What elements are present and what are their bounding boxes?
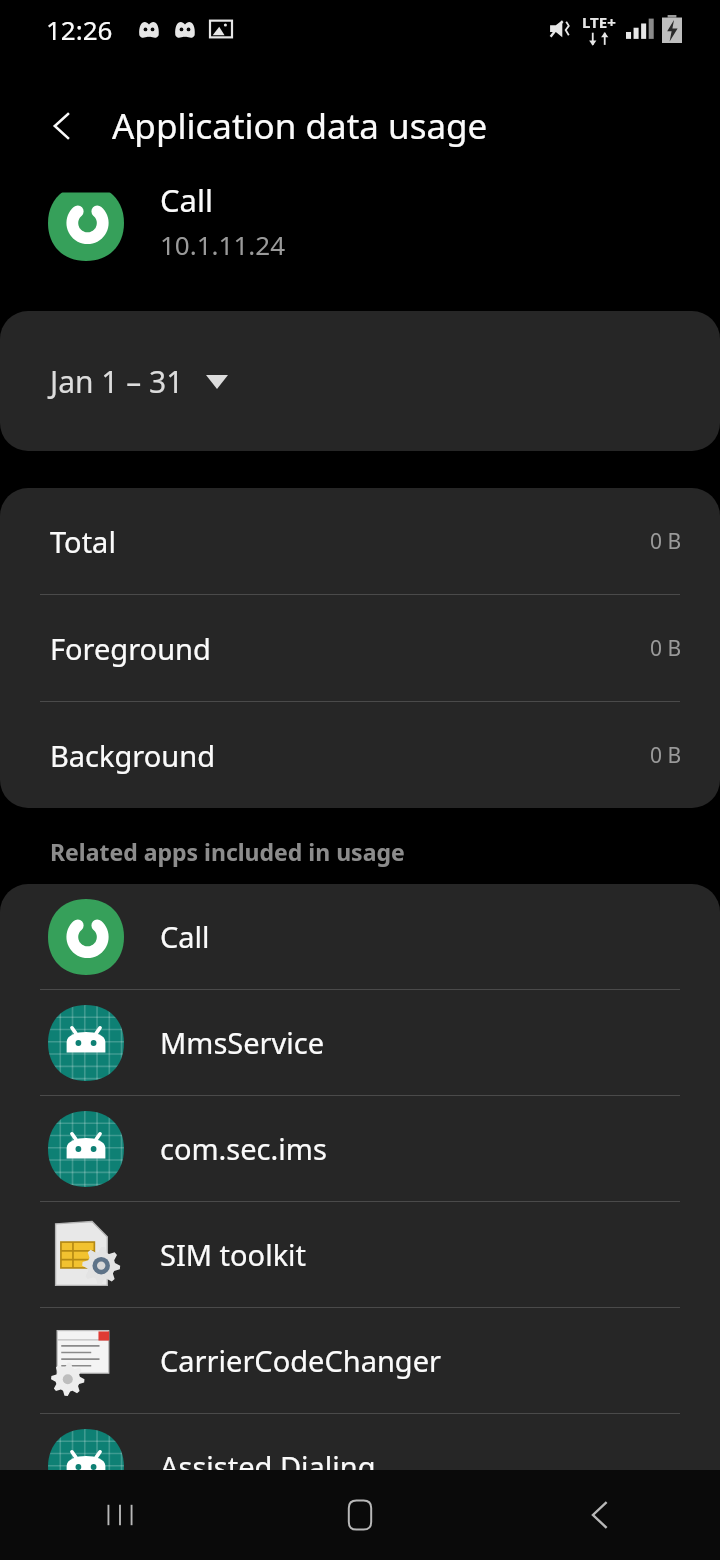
staticText: Foreground <box>50 629 211 668</box>
button[interactable]: Jan 1 – 31 <box>0 311 720 451</box>
staticText: 0 B <box>650 527 682 556</box>
staticText: SIM toolkit <box>160 1235 307 1274</box>
staticText: Jan 1 – 31 <box>50 361 184 402</box>
button[interactable]: com.sec.ims <box>0 1096 720 1201</box>
staticText: 0 B <box>650 634 682 663</box>
staticText: Total <box>50 522 116 561</box>
button[interactable]: Recent apps <box>0 1470 240 1560</box>
button[interactable]: Call <box>0 884 720 989</box>
button[interactable]: Home <box>240 1470 480 1560</box>
staticText: CarrierCodeChanger <box>160 1341 442 1380</box>
button[interactable]: CarrierCodeChanger <box>0 1308 720 1413</box>
staticText: Assisted Dialing <box>160 1447 376 1486</box>
staticText: Related apps included in usage <box>50 836 405 867</box>
button[interactable]: Back <box>480 1470 720 1560</box>
button[interactable]: Navigate up <box>30 94 94 158</box>
staticText: LTE+ <box>582 12 616 32</box>
button[interactable]: MmsService <box>0 990 720 1095</box>
staticText: 10.1.11.24 <box>160 227 286 262</box>
button[interactable]: Foreground <box>0 595 720 701</box>
button[interactable]: Background <box>0 702 720 808</box>
staticText: Call <box>160 917 210 956</box>
button[interactable]: Assisted Dialing <box>0 1414 720 1519</box>
staticText: 12:26 <box>46 12 113 47</box>
staticText: 0 B <box>650 741 682 770</box>
staticText: Background <box>50 736 215 775</box>
staticText: Application data usage <box>112 102 488 150</box>
staticText: com.sec.ims <box>160 1129 327 1168</box>
staticText: MmsService <box>160 1023 325 1062</box>
staticText: Call <box>160 179 213 213</box>
button[interactable]: SIM toolkit <box>0 1202 720 1307</box>
button[interactable]: Total <box>0 488 720 594</box>
